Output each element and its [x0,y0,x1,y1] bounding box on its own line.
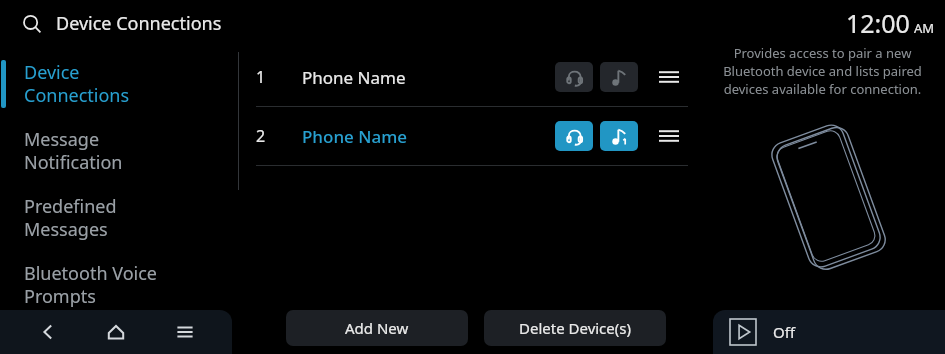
staticText: Phone Name [302,66,406,89]
staticText: Device Connections [24,60,130,107]
staticText: Delete Device(s) [519,318,631,338]
button[interactable]: Predefined Messages [0,184,232,251]
staticText: AM [914,19,935,37]
staticText: Add New [345,318,409,338]
button[interactable]: Phone audio [555,62,593,92]
staticText: Phone Name [302,125,408,148]
staticText: Off [773,322,796,342]
button[interactable]: Back [27,311,69,353]
staticText: 1 [256,66,274,88]
staticText: Bluetooth Voice Prompts [24,261,157,308]
button[interactable]: Add New [286,310,468,346]
button[interactable]: Media audio [600,62,638,92]
button[interactable]: Device Connections [0,50,232,117]
staticText: Provides access to pair a new Bluetooth … [710,44,935,98]
button[interactable]: 2 [256,107,688,165]
button[interactable]: Menu [164,311,206,353]
button[interactable]: Home [95,311,137,353]
button[interactable]: Off [713,310,945,354]
staticText: Device Connections [56,11,222,36]
button[interactable]: Options [654,121,684,151]
button[interactable]: Delete Device(s) [484,310,666,346]
button[interactable]: Message Notification [0,117,232,184]
button[interactable]: 1 [256,48,688,106]
button[interactable]: Search [18,7,226,40]
staticText: 12:00 [846,6,910,40]
button[interactable]: Bluetooth Voice Prompts [0,251,232,318]
button[interactable]: Phone audio [555,121,593,151]
staticText: Message Notification [24,127,123,174]
button[interactable]: Options [654,62,684,92]
staticText: Predefined Messages [24,194,117,241]
button[interactable]: Media audio [600,121,638,151]
staticText: 2 [256,125,274,147]
